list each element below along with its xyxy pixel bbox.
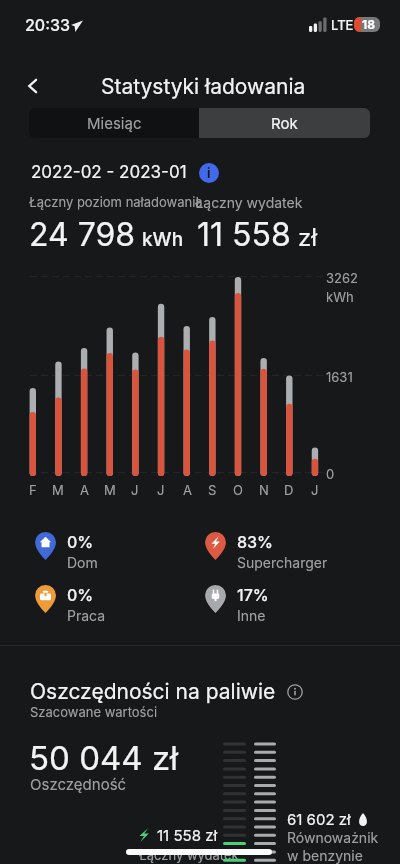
staticText: 18 <box>362 17 375 32</box>
staticText: 1631 <box>326 369 353 385</box>
staticText: 17% <box>237 585 269 604</box>
staticText: kWh <box>326 289 354 305</box>
staticText: J <box>131 482 139 498</box>
staticText: Łączny wydatek <box>195 194 303 211</box>
staticText: Równoważnik <box>287 829 379 846</box>
staticText: J <box>311 482 319 498</box>
staticText: Oszczędności na paliwie <box>30 679 276 704</box>
staticText: M <box>52 482 64 498</box>
staticText: Statystyki ładowania <box>101 74 306 99</box>
staticText: D <box>284 482 294 498</box>
staticText: O <box>233 482 243 498</box>
staticText: 50 044 zł <box>29 738 179 778</box>
staticText: Miesiąc <box>87 114 142 132</box>
staticText: 20:33 <box>25 15 71 34</box>
staticText: Inne <box>237 607 266 624</box>
staticText: Rok <box>271 114 298 132</box>
staticText: zł <box>298 223 318 252</box>
staticText: Szacowane wartości <box>30 704 158 720</box>
staticText: w benzynie <box>287 847 363 864</box>
button[interactable]: Information <box>287 684 303 700</box>
staticText: 3262 <box>326 270 358 286</box>
button[interactable]: Back <box>15 68 51 104</box>
staticText: Oszczędność <box>30 775 127 793</box>
button[interactable]: 0% <box>35 532 98 572</box>
button[interactable]: 83% <box>205 532 328 572</box>
button[interactable]: 0% <box>35 585 106 625</box>
staticText: Praca <box>67 607 106 624</box>
button[interactable]: 17% <box>205 585 269 625</box>
staticText: A <box>80 482 89 498</box>
staticText: Dom <box>67 554 98 571</box>
staticText: Supercharger <box>237 554 328 571</box>
staticText: 2022-02 - 2023-01 <box>31 162 187 183</box>
staticText: 83% <box>237 532 273 551</box>
staticText: i <box>207 165 211 181</box>
staticText: A <box>183 482 192 498</box>
staticText: J <box>157 482 165 498</box>
staticText: 11 558 zł <box>157 826 218 844</box>
staticText: 0% <box>67 585 94 604</box>
staticText: 11 558 <box>197 215 291 254</box>
staticText: F <box>29 482 37 498</box>
staticText: 24 798 <box>29 215 136 254</box>
staticText: Łączny wydatek <box>139 847 239 863</box>
staticText: S <box>208 482 217 498</box>
staticText: 0% <box>67 532 94 551</box>
button[interactable]: Info <box>199 163 219 183</box>
button[interactable]: Rok <box>199 108 370 138</box>
staticText: 61 602 zł <box>287 810 351 828</box>
staticText: LTE <box>331 17 354 33</box>
staticText: M <box>104 482 116 498</box>
staticText: kWh <box>142 228 184 251</box>
staticText: 0 <box>326 466 335 482</box>
button[interactable]: Miesiąc <box>29 108 199 138</box>
staticText: Łączny poziom naładowania <box>29 194 203 210</box>
staticText: N <box>259 482 269 498</box>
